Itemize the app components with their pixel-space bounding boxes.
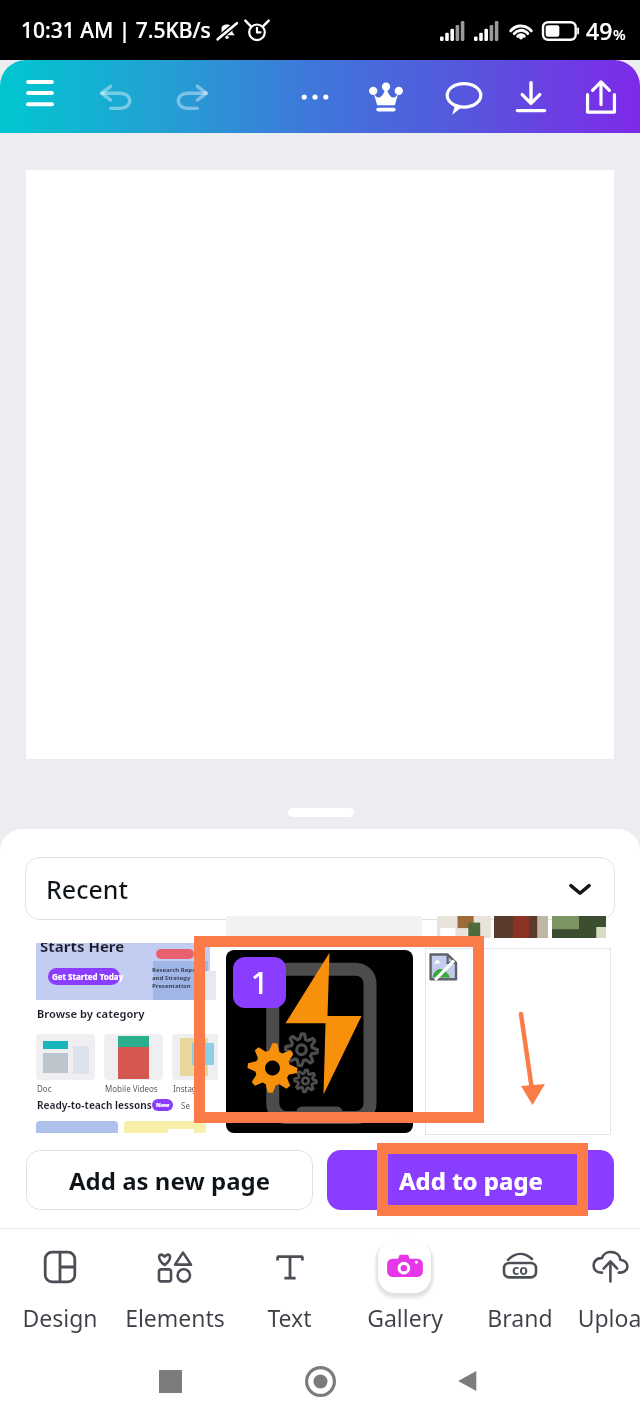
staticText: Text xyxy=(267,1302,312,1333)
button[interactable]: Back xyxy=(448,1361,488,1401)
staticText: Starts Here xyxy=(40,943,125,956)
button[interactable]: Add to page xyxy=(327,1150,614,1210)
button[interactable]: Upload xyxy=(577,1229,640,1340)
staticText: Mobile Videos xyxy=(105,1083,158,1094)
button[interactable]: Selected photo 1 xyxy=(226,950,413,1133)
button[interactable]: Recent xyxy=(25,857,615,920)
staticText: % xyxy=(613,24,626,44)
staticText: 1 xyxy=(251,962,269,1003)
staticText: 49 xyxy=(586,15,613,46)
staticText: Instagr xyxy=(173,1083,201,1094)
button[interactable]: Canva home screenshot xyxy=(28,943,218,1133)
button[interactable]: Text xyxy=(232,1229,347,1340)
button[interactable]: Download xyxy=(506,72,555,121)
button[interactable]: Share xyxy=(576,72,625,121)
staticText: Doc xyxy=(37,1083,52,1094)
staticText: 10:31 AM | 7.5KB/s xyxy=(21,16,211,45)
button[interactable]: Undo xyxy=(91,72,140,121)
button[interactable]: Home xyxy=(300,1361,340,1401)
staticText: Elements xyxy=(125,1302,225,1333)
staticText: Upload xyxy=(577,1302,640,1333)
button[interactable]: co xyxy=(462,1229,577,1340)
staticText: Brand xyxy=(487,1302,553,1333)
button[interactable]: More options xyxy=(290,72,339,121)
button[interactable]: Photo xyxy=(425,948,611,1135)
staticText: Gallery xyxy=(367,1302,443,1333)
staticText: Add to page xyxy=(399,1164,543,1197)
staticText: Research Report and Strategy Presentatio… xyxy=(152,966,202,990)
button[interactable]: Gallery xyxy=(347,1229,462,1340)
staticText: Get Started Today xyxy=(52,971,124,982)
staticText: Browse by category xyxy=(37,1006,145,1021)
button[interactable]: Canva Pro xyxy=(361,72,410,121)
staticText: Se xyxy=(181,1100,190,1111)
button[interactable]: Comments xyxy=(439,72,488,121)
staticText: New xyxy=(156,1101,170,1109)
button[interactable]: Design xyxy=(2,1229,117,1340)
button[interactable]: Redo xyxy=(167,72,216,121)
staticText: Ready-to-teach lessons xyxy=(37,1098,152,1112)
button[interactable]: Menu xyxy=(15,72,64,121)
staticText: Add as new page xyxy=(69,1164,271,1197)
button[interactable]: Recents xyxy=(150,1361,190,1401)
button[interactable]: Elements xyxy=(117,1229,232,1340)
staticText: Recent xyxy=(46,872,129,906)
staticText: Design xyxy=(22,1302,98,1333)
button[interactable]: Add as new page xyxy=(26,1150,313,1210)
staticText: co xyxy=(512,1260,528,1279)
